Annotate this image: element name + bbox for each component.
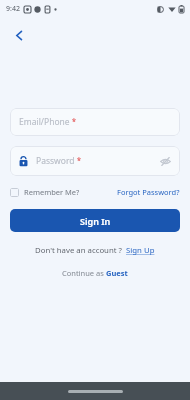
button[interactable]: Email/Phone * bbox=[10, 108, 180, 136]
staticText: Continue as bbox=[62, 268, 106, 278]
staticText: Sign In bbox=[80, 215, 111, 227]
button[interactable]: Forgot Password? bbox=[117, 187, 180, 197]
button[interactable]: Password * bbox=[10, 146, 180, 176]
button[interactable]: Continue as bbox=[62, 268, 128, 278]
staticText: Remember Me? bbox=[24, 187, 80, 197]
button[interactable]: Back bbox=[8, 24, 30, 46]
staticText: Sign Up bbox=[126, 245, 155, 256]
staticText: Forgot Password? bbox=[117, 187, 180, 197]
button[interactable]: Sign In bbox=[10, 209, 180, 232]
button[interactable]: Remember Me? bbox=[10, 186, 80, 198]
button[interactable]: Sign Up bbox=[126, 245, 155, 256]
staticText: Password * bbox=[36, 155, 82, 167]
button[interactable]: Show password bbox=[158, 154, 172, 168]
staticText: Guest bbox=[106, 268, 128, 278]
staticText: Email/Phone * bbox=[19, 116, 77, 128]
staticText: 9:42 bbox=[6, 4, 20, 14]
staticText: Don't have an account ? bbox=[35, 245, 122, 256]
